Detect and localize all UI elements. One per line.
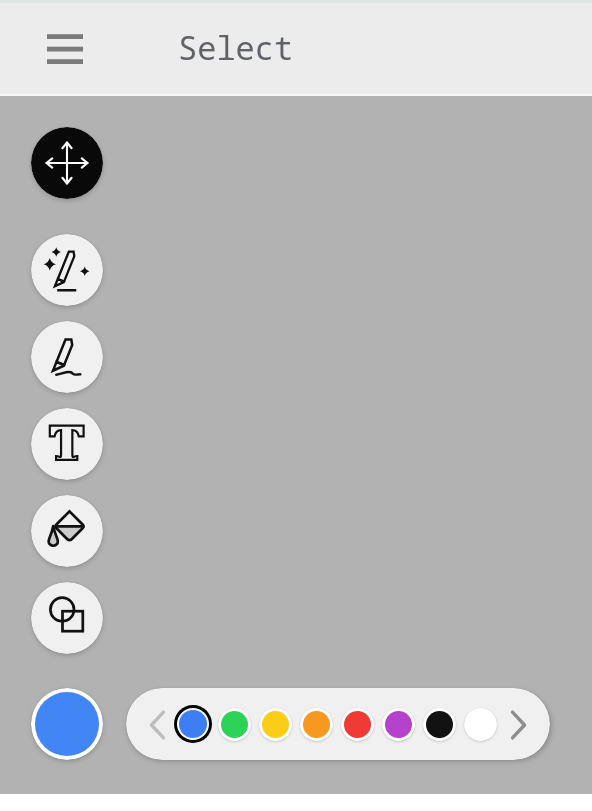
button[interactable]	[459, 703, 501, 745]
button[interactable]: Shapes	[31, 582, 103, 654]
button[interactable]: Magic pen	[31, 234, 103, 306]
button[interactable]	[295, 703, 337, 745]
button[interactable]	[418, 703, 460, 745]
button[interactable]	[254, 703, 296, 745]
button[interactable]: Pen	[31, 321, 103, 393]
button[interactable]: Fill	[31, 495, 103, 567]
staticText: Select	[178, 26, 294, 70]
button[interactable]: Previous colors	[136, 703, 179, 746]
button[interactable]: Text	[31, 408, 103, 480]
button[interactable]	[213, 703, 255, 745]
button[interactable]: Move	[31, 127, 103, 199]
button[interactable]: Next colors	[497, 703, 540, 746]
button[interactable]	[377, 703, 419, 745]
button[interactable]	[336, 703, 378, 745]
button[interactable]: Current color	[35, 692, 99, 756]
button[interactable]	[172, 703, 214, 745]
button[interactable]: Menu	[38, 21, 92, 75]
